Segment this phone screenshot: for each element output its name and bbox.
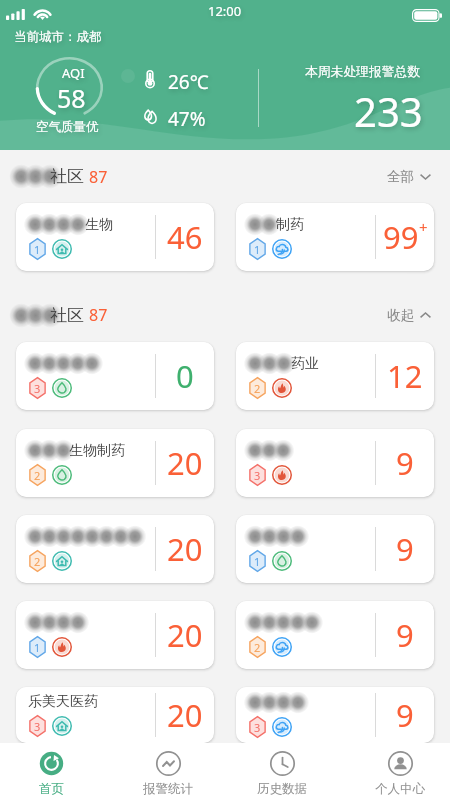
button[interactable]: 收起 xyxy=(383,301,436,330)
button[interactable]: 乐美天医药 xyxy=(16,687,214,743)
staticText: 历史数据 xyxy=(257,781,307,797)
button[interactable]: 药业 xyxy=(236,342,434,410)
staticText: 2 xyxy=(34,554,41,569)
staticText: 1 xyxy=(34,640,41,655)
staticText: 报警统计 xyxy=(143,781,193,797)
button[interactable]: 1 xyxy=(236,515,434,583)
button[interactable]: 生物制药 xyxy=(16,429,214,497)
button[interactable]: 生物 xyxy=(16,203,214,271)
staticText: 3 xyxy=(254,720,261,735)
button[interactable]: 2 xyxy=(16,515,214,583)
staticText: 制药 xyxy=(276,216,304,234)
staticText: 9 xyxy=(396,694,414,736)
staticText: 2 xyxy=(34,468,41,483)
button[interactable]: 2 xyxy=(236,601,434,669)
staticText: 3 xyxy=(34,719,41,734)
staticText: 12:00 xyxy=(208,2,242,20)
staticText: 47% xyxy=(168,106,206,132)
staticText: 全部 xyxy=(387,168,414,185)
staticText: 9 xyxy=(396,614,414,656)
button[interactable]: 3 xyxy=(16,342,214,410)
staticText: 58 xyxy=(57,81,86,115)
staticText: 9 xyxy=(396,528,414,570)
staticText: 个人中心 xyxy=(375,781,425,797)
staticText: 20 xyxy=(167,614,203,656)
button[interactable]: 制药 xyxy=(236,203,434,271)
staticText: 0 xyxy=(176,355,194,397)
staticText: 1 xyxy=(254,554,261,569)
button[interactable]: 1 xyxy=(16,601,214,669)
staticText: 当前城市：成都 xyxy=(14,29,102,45)
staticText: AQI xyxy=(62,64,85,82)
staticText: 12 xyxy=(387,355,423,397)
staticText: 收起 xyxy=(387,307,414,324)
staticText: 2 xyxy=(254,381,261,396)
button[interactable]: 全部 xyxy=(383,162,436,191)
staticText: 26℃ xyxy=(168,69,209,95)
staticText: 1 xyxy=(34,242,41,257)
button[interactable]: 个人中心 xyxy=(354,743,446,800)
button[interactable]: 3 xyxy=(236,687,434,743)
button[interactable]: 历史数据 xyxy=(236,743,328,800)
staticText: 社区 xyxy=(50,166,84,187)
staticText: 87 xyxy=(89,166,108,188)
staticText: 1 xyxy=(254,242,261,257)
staticText: 20 xyxy=(167,528,203,570)
staticText: 2 xyxy=(254,640,261,655)
staticText: 生物 xyxy=(85,216,113,234)
staticText: 社区 xyxy=(50,305,84,326)
staticText: 9 xyxy=(396,442,414,484)
staticText: 233 xyxy=(354,84,423,138)
staticText: 46 xyxy=(167,216,203,258)
staticText: 空气质量优 xyxy=(36,119,99,135)
staticText: 99 xyxy=(383,216,419,258)
staticText: 药业 xyxy=(291,355,319,373)
staticText: 20 xyxy=(167,694,203,736)
staticText: 3 xyxy=(254,468,261,483)
staticText: + xyxy=(419,217,428,237)
staticText: 20 xyxy=(167,442,203,484)
staticText: 本周未处理报警总数 xyxy=(305,64,421,80)
staticText: 3 xyxy=(34,381,41,396)
button[interactable]: 首页 xyxy=(5,743,97,800)
staticText: 87 xyxy=(89,304,108,326)
staticText: 生物制药 xyxy=(69,442,125,460)
button[interactable]: 报警统计 xyxy=(122,743,214,800)
staticText: 首页 xyxy=(39,781,64,797)
button[interactable]: 3 xyxy=(236,429,434,497)
staticText: 乐美天医药 xyxy=(28,693,98,711)
